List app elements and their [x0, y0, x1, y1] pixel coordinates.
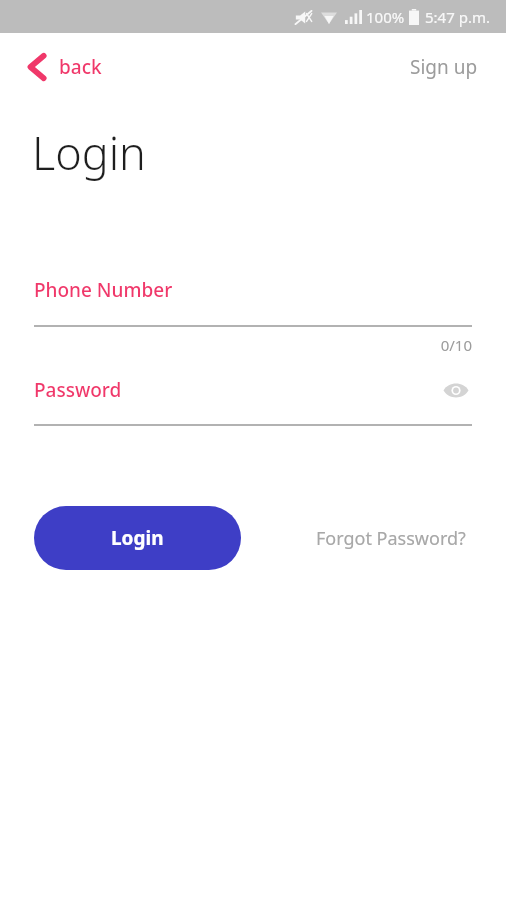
staticText: Forgot Password?: [316, 526, 466, 551]
button[interactable]: Password: [0, 377, 506, 426]
button[interactable]: back: [20, 45, 109, 89]
staticText: Login: [111, 525, 164, 551]
button[interactable]: Phone Number: [0, 277, 506, 355]
staticText: Login: [32, 122, 146, 183]
staticText: Sign up: [410, 54, 478, 80]
button[interactable]: Show password: [440, 379, 472, 402]
staticText: Phone Number: [34, 277, 173, 303]
staticText: 0/10: [34, 335, 472, 355]
button[interactable]: Login: [34, 506, 241, 570]
button[interactable]: Forgot Password?: [310, 518, 472, 559]
staticText: 5:47 p.m.: [425, 7, 490, 27]
staticText: 100%: [366, 7, 405, 27]
button[interactable]: Sign up: [402, 46, 486, 88]
staticText: Password: [34, 377, 122, 403]
staticText: back: [59, 54, 102, 80]
